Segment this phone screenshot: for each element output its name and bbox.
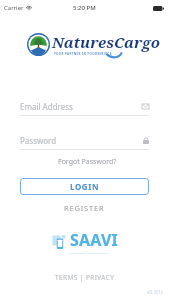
other: Password [143, 137, 149, 144]
staticText: YOUR PARTNER IN FOODSERVICE [54, 52, 112, 56]
other: Email [142, 104, 149, 109]
staticText: Password [20, 135, 143, 146]
staticText: Email Address [20, 101, 142, 112]
button[interactable]: Password [20, 135, 149, 150]
staticText: Natures [52, 32, 114, 52]
staticText: SAAVI [70, 229, 118, 251]
button[interactable]: LOGIN [20, 178, 149, 195]
staticText: 5:20 PM [73, 4, 96, 12]
staticText: Cargo [114, 32, 160, 52]
staticText: v5.3(1) [147, 289, 163, 296]
staticText: Carrier [4, 4, 24, 12]
other: SAAVI [52, 234, 68, 250]
button[interactable]: Email Address [20, 101, 149, 116]
button[interactable]: REGISTER [58, 201, 111, 215]
staticText: LOGIN [70, 181, 100, 192]
staticText: SOFTWARE APPLICATIONS [70, 251, 108, 254]
button[interactable]: Forgot Password? [55, 155, 120, 169]
button[interactable]: TERMS | PRIVACY [49, 271, 121, 284]
